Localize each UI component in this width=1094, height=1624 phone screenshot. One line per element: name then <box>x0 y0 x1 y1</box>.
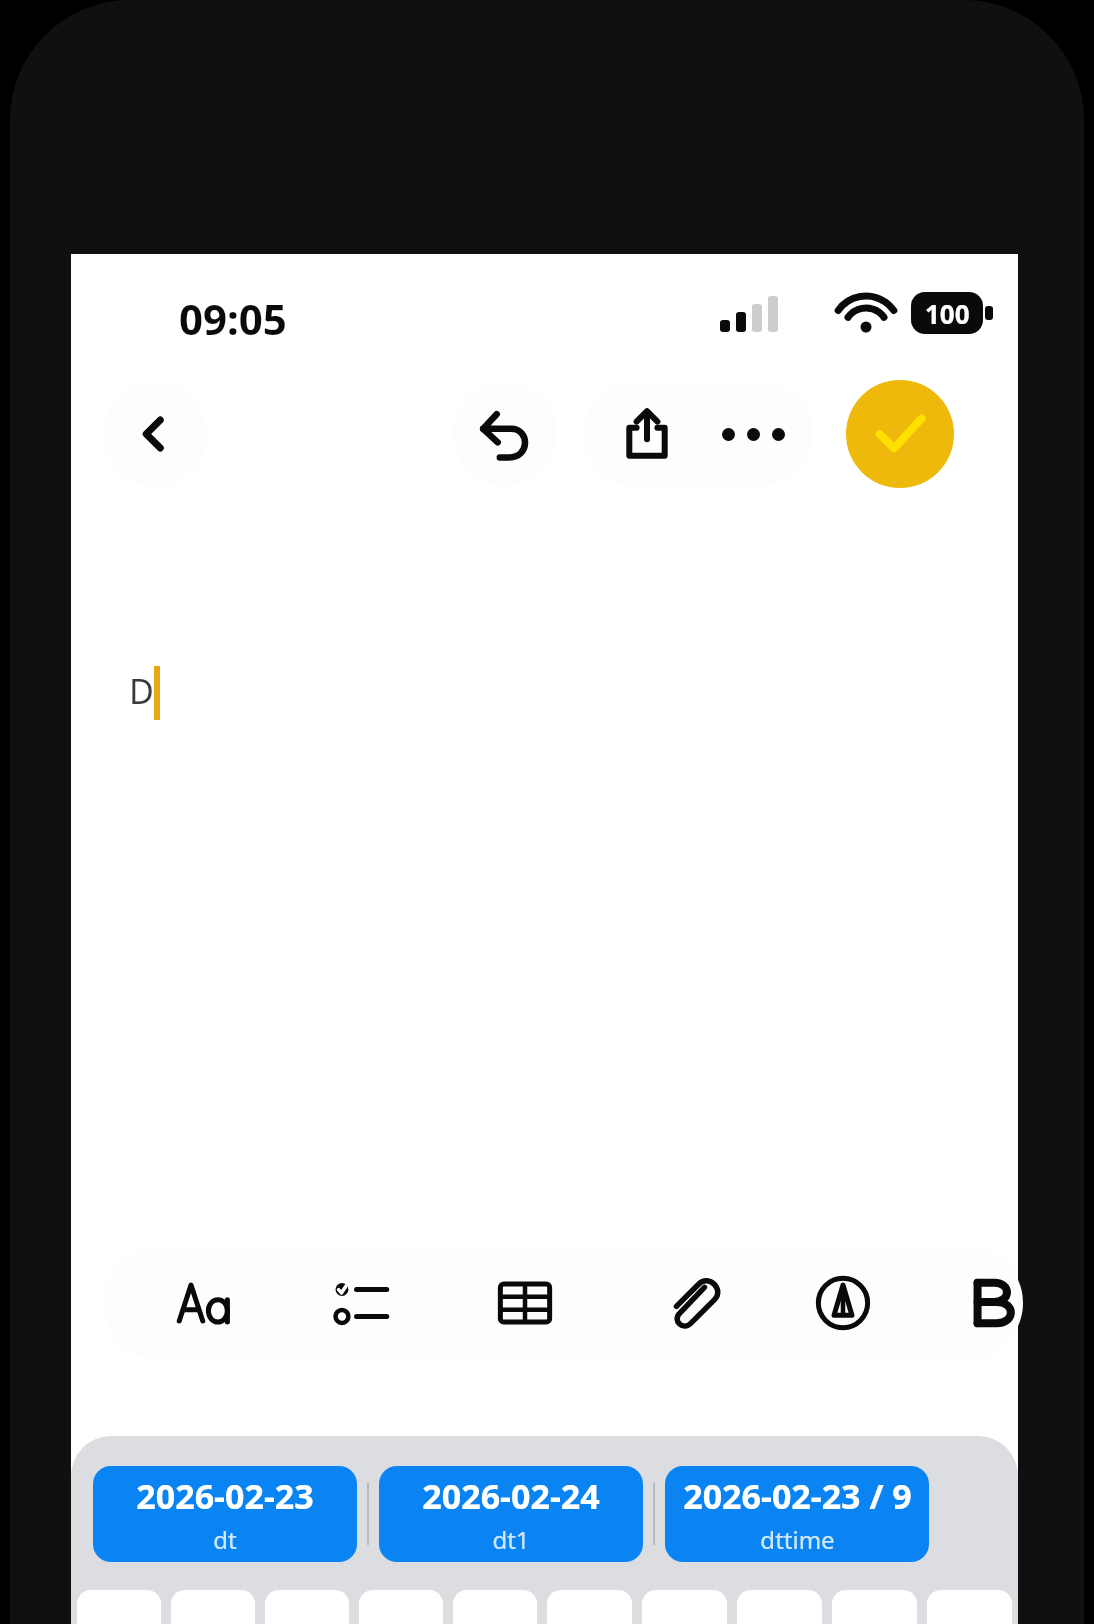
button[interactable]: Share <box>597 384 697 484</box>
button[interactable] <box>77 1590 161 1624</box>
button[interactable] <box>737 1590 822 1624</box>
button[interactable]: 2026-02-23 / 9 <box>665 1466 929 1562</box>
button[interactable] <box>171 1590 255 1624</box>
staticText: 2026-02-24 <box>422 1473 600 1519</box>
button[interactable]: Format tool <box>485 1263 565 1343</box>
staticText: 09:05 <box>179 290 287 347</box>
button[interactable] <box>927 1590 1012 1624</box>
button[interactable] <box>359 1590 443 1624</box>
button[interactable]: Done <box>846 380 954 488</box>
button[interactable] <box>832 1590 917 1624</box>
button[interactable] <box>642 1590 727 1624</box>
button[interactable]: More options <box>703 384 803 484</box>
staticText: dttime <box>760 1523 835 1556</box>
staticText: dt <box>213 1523 237 1556</box>
button[interactable]: 2026-02-24 <box>379 1466 643 1562</box>
button[interactable] <box>547 1590 632 1624</box>
staticText: 2026-02-23 / 9 <box>683 1473 912 1519</box>
button[interactable]: 2026-02-23 <box>93 1466 357 1562</box>
staticText: dt1 <box>492 1523 530 1556</box>
button[interactable]: Format tool <box>651 1263 731 1343</box>
button[interactable]: Format tool <box>951 1263 1023 1343</box>
button[interactable]: Undo <box>453 382 557 486</box>
button[interactable]: Format tool <box>803 1263 883 1343</box>
button[interactable]: Format tool <box>165 1263 245 1343</box>
staticText: 100 <box>925 296 970 331</box>
button[interactable]: Back <box>103 382 207 486</box>
button[interactable] <box>265 1590 349 1624</box>
staticText: D <box>129 668 154 714</box>
staticText: 2026-02-23 <box>136 1473 314 1519</box>
button[interactable]: Format tool <box>321 1263 401 1343</box>
button[interactable] <box>453 1590 537 1624</box>
